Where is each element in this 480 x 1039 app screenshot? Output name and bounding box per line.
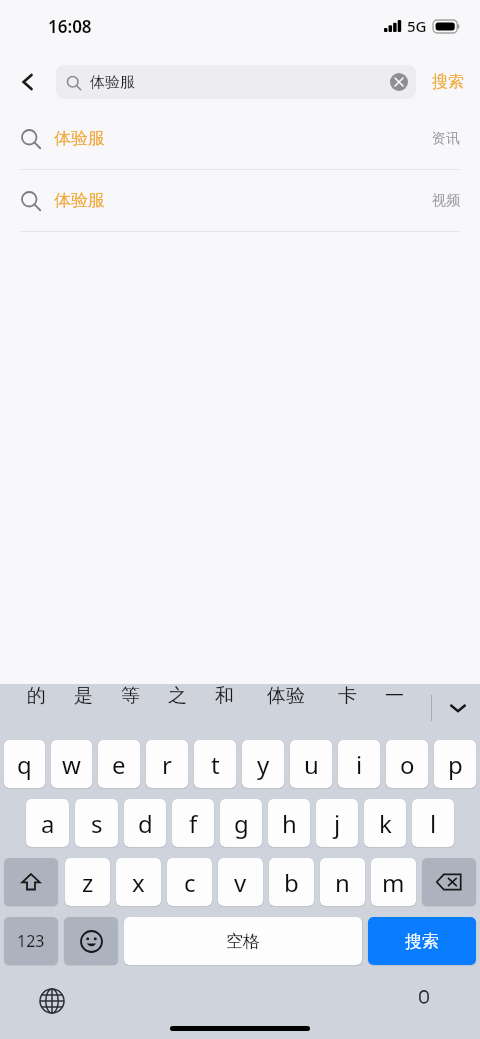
staticText: d <box>138 807 153 840</box>
staticText: b <box>284 866 299 899</box>
staticText: w <box>62 748 81 781</box>
button[interactable]: g <box>220 799 262 847</box>
button[interactable]: s <box>75 799 118 847</box>
button[interactable]: v <box>218 858 263 906</box>
button[interactable]: 体验服 <box>0 170 480 231</box>
button[interactable]: 是 <box>60 684 107 708</box>
staticText: u <box>304 748 319 781</box>
button[interactable]: 体验服 <box>0 108 480 169</box>
button[interactable]: Shift <box>4 858 58 906</box>
staticText: s <box>91 807 103 840</box>
staticText: 资讯 <box>432 130 460 148</box>
button[interactable]: 一 <box>371 684 418 708</box>
staticText: t <box>211 748 220 781</box>
staticText: 视频 <box>432 192 460 210</box>
button[interactable]: 的 <box>12 684 60 708</box>
button[interactable]: a <box>26 799 69 847</box>
staticText: v <box>234 866 247 899</box>
staticText: 体验服 <box>54 128 105 149</box>
staticText: g <box>234 807 249 840</box>
staticText: e <box>112 748 126 781</box>
button[interactable]: 搜索 <box>416 56 480 108</box>
button[interactable]: l <box>412 799 454 847</box>
button[interactable]: Collapse keyboard <box>436 684 480 732</box>
staticText: p <box>448 748 463 781</box>
button[interactable]: t <box>194 740 236 788</box>
button[interactable]: Backspace <box>422 858 476 906</box>
button[interactable]: x <box>116 858 161 906</box>
staticText: i <box>356 748 363 781</box>
staticText: z <box>82 866 94 899</box>
staticText: 搜索 <box>432 72 464 92</box>
staticText: l <box>430 807 437 840</box>
button[interactable]: f <box>172 799 214 847</box>
button[interactable]: z <box>65 858 110 906</box>
staticText: 空格 <box>226 931 260 952</box>
staticText: m <box>382 866 405 899</box>
staticText: 体验 <box>267 684 305 708</box>
staticText: q <box>17 748 32 781</box>
staticText: 一 <box>385 684 404 708</box>
staticText: 等 <box>121 684 140 708</box>
button[interactable]: c <box>167 858 212 906</box>
button[interactable]: 体验服 <box>56 65 416 99</box>
staticText: f <box>189 807 198 840</box>
button[interactable]: 等 <box>107 684 154 708</box>
button[interactable]: d <box>124 799 166 847</box>
button[interactable]: Dictation <box>404 981 444 1021</box>
button[interactable]: n <box>320 858 365 906</box>
staticText: 体验服 <box>90 73 135 92</box>
button[interactable]: 空格 <box>124 917 362 965</box>
staticText: 是 <box>74 684 93 708</box>
button[interactable]: j <box>316 799 358 847</box>
staticText: k <box>379 807 392 840</box>
staticText: 之 <box>168 684 187 708</box>
button[interactable]: 之 <box>154 684 201 708</box>
staticText: 体验服 <box>54 190 105 211</box>
button[interactable]: w <box>51 740 92 788</box>
staticText: o <box>400 748 415 781</box>
staticText: h <box>282 807 297 840</box>
button[interactable]: m <box>371 858 416 906</box>
button[interactable]: y <box>242 740 284 788</box>
staticText: 16:08 <box>48 15 92 38</box>
staticText: 和 <box>215 684 234 708</box>
button[interactable]: Clear <box>390 73 408 91</box>
button[interactable]: 123 <box>4 917 58 965</box>
button[interactable]: r <box>146 740 188 788</box>
staticText: 卡 <box>338 684 357 708</box>
button[interactable]: 卡 <box>324 684 371 708</box>
button[interactable]: o <box>386 740 428 788</box>
button[interactable]: 体验 <box>248 684 324 708</box>
button[interactable]: Back <box>0 56 56 108</box>
button[interactable]: 搜索 <box>368 917 476 965</box>
staticText: c <box>184 866 196 899</box>
staticText: j <box>334 807 341 840</box>
staticText: r <box>162 748 172 781</box>
button[interactable]: h <box>268 799 310 847</box>
button[interactable]: u <box>290 740 332 788</box>
staticText: 的 <box>27 684 46 708</box>
staticText: 5G <box>407 16 427 36</box>
staticText: y <box>257 748 270 781</box>
staticText: a <box>41 807 55 840</box>
button[interactable]: 和 <box>201 684 248 708</box>
button[interactable]: Switch language <box>32 981 72 1021</box>
button[interactable]: b <box>269 858 314 906</box>
button[interactable]: p <box>434 740 476 788</box>
button[interactable]: k <box>364 799 406 847</box>
staticText: x <box>132 866 145 899</box>
staticText: n <box>335 866 350 899</box>
staticText: 搜索 <box>405 931 439 952</box>
button[interactable]: q <box>4 740 45 788</box>
button[interactable]: e <box>98 740 140 788</box>
button[interactable]: i <box>338 740 380 788</box>
button[interactable]: Emoji <box>64 917 118 965</box>
staticText: 123 <box>17 930 45 952</box>
